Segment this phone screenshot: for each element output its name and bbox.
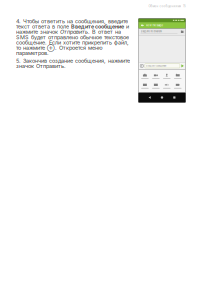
button[interactable]: Attachment <box>140 82 150 90</box>
button[interactable]: Attachment <box>162 73 172 80</box>
staticText: Обмен сообщениями <box>148 4 181 8</box>
staticText: 15 <box>183 4 186 8</box>
button[interactable]: Attachment <box>140 73 150 80</box>
staticText: параметров. <box>16 50 49 56</box>
button[interactable]: Attachment <box>162 82 172 90</box>
button[interactable]: Attach <box>140 64 144 68</box>
button[interactable]: New message <box>138 22 185 28</box>
staticText: Введите сообщение <box>146 64 166 67</box>
button[interactable]: Attachment <box>151 82 161 90</box>
staticText: то нажмите ⊕. Откроется меню <box>16 44 103 51</box>
button[interactable]: Recents <box>173 96 175 99</box>
staticText: SMS будет отправлено обычное текстовое <box>16 34 129 40</box>
staticText: Отправить <box>60 28 88 35</box>
staticText: Введите сообщение <box>71 23 124 30</box>
staticText: New message <box>146 24 164 27</box>
button[interactable]: Attachment <box>151 73 161 80</box>
staticText: . В ответ на <box>88 28 121 35</box>
staticText: и <box>124 23 129 30</box>
staticText: значок Отправить. <box>16 63 66 69</box>
button[interactable]: Back <box>149 96 151 99</box>
staticText: сообщение. Если хотите прикрепить файл, <box>16 39 129 46</box>
staticText: текст ответа в поле <box>16 23 71 30</box>
staticText: 4. Чтобы ответить на сообщения, введите <box>16 18 128 24</box>
staticText: 5. Закончив создание сообщения, нажмите <box>16 57 130 64</box>
button[interactable]: Choose contact <box>181 30 183 33</box>
button[interactable]: Send <box>181 64 184 68</box>
button[interactable]: Attachment <box>173 73 182 80</box>
staticText: Введите получателя <box>140 30 161 33</box>
button[interactable]: Attachment <box>173 82 182 90</box>
staticText: нажмите значок <box>16 28 60 35</box>
button[interactable]: Home <box>161 96 163 99</box>
